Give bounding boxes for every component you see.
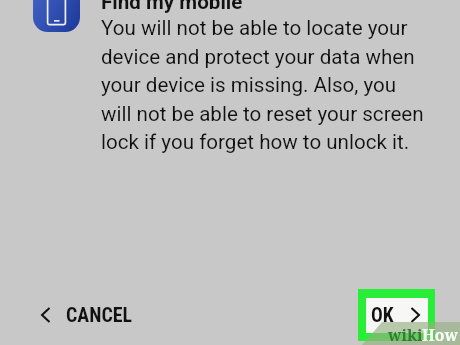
other: Next [411,307,420,323]
staticText: OK [371,304,394,327]
staticText: will not be able to reset your screen [101,102,424,126]
staticText: Find my mobile [101,0,243,14]
button[interactable]: OK [366,298,428,333]
staticText: lock if you forget how to unlock it. [101,130,410,154]
staticText: device and protect your data when [101,45,415,69]
staticText: How [422,324,458,345]
staticText: CANCEL [66,304,133,327]
staticText: You will not be able to locate your [101,16,408,40]
button[interactable]: CANCEL [33,298,139,330]
staticText: wiki [388,324,423,345]
staticText: your device is missing. Also, you [101,73,397,97]
